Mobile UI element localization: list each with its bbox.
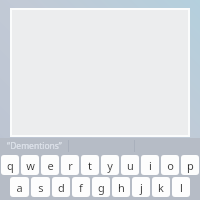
button[interactable]: l: [172, 177, 190, 197]
staticText: a: [16, 180, 23, 195]
staticText: u: [127, 158, 134, 173]
staticText: d: [58, 180, 65, 195]
button[interactable]: r: [61, 155, 79, 175]
button[interactable]: p: [181, 155, 199, 175]
button[interactable]: y: [101, 155, 119, 175]
staticText: “Dementions”: [7, 140, 62, 152]
staticText: q: [7, 158, 14, 173]
button[interactable]: f: [72, 177, 90, 197]
button[interactable]: d: [52, 177, 70, 197]
staticText: l: [180, 180, 183, 195]
button[interactable]: i: [141, 155, 159, 175]
button[interactable]: s: [31, 177, 50, 197]
button[interactable]: o: [161, 155, 179, 175]
staticText: r: [68, 158, 73, 173]
staticText: w: [26, 158, 35, 173]
button[interactable]: a: [10, 177, 29, 197]
staticText: g: [98, 180, 105, 195]
button[interactable]: k: [152, 177, 170, 197]
button[interactable]: h: [112, 177, 130, 197]
staticText: f: [79, 180, 83, 195]
button[interactable]: q: [1, 155, 19, 175]
button[interactable]: e: [41, 155, 59, 175]
button[interactable]: “Dementions”: [0, 138, 68, 153]
button[interactable]: t: [81, 155, 99, 175]
staticText: p: [187, 158, 194, 173]
staticText: t: [88, 158, 92, 173]
button[interactable]: j: [132, 177, 150, 197]
staticText: i: [149, 158, 152, 173]
staticText: o: [167, 158, 174, 173]
staticText: h: [118, 180, 125, 195]
staticText: j: [140, 180, 143, 195]
staticText: s: [38, 180, 44, 195]
button[interactable]: g: [92, 177, 110, 197]
staticText: k: [158, 180, 164, 195]
button[interactable]: w: [21, 155, 39, 175]
staticText: e: [47, 158, 54, 173]
button[interactable]: u: [121, 155, 139, 175]
staticText: y: [107, 158, 113, 173]
